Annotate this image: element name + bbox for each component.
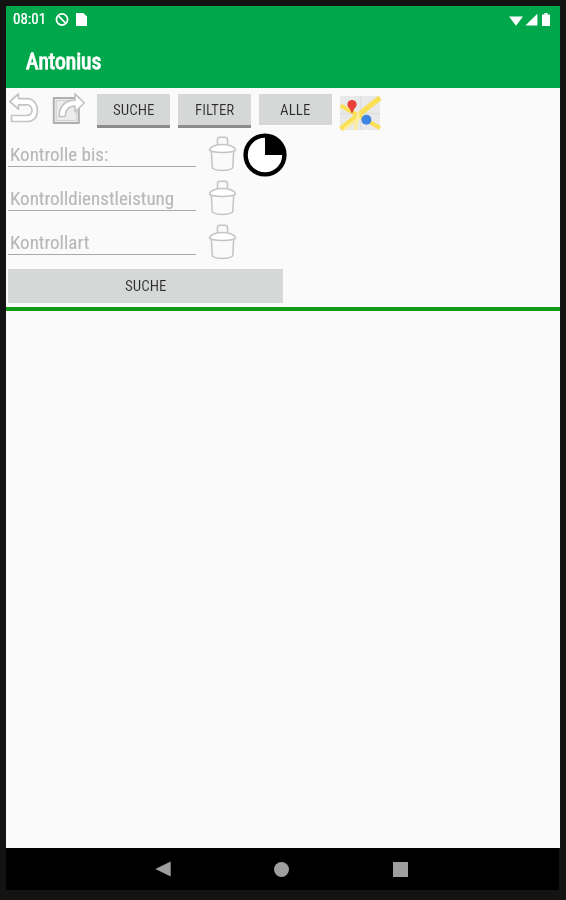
button[interactable]: Map [339,96,381,130]
staticText: 08:01 [13,10,47,28]
button[interactable]: FILTER [178,94,251,128]
staticText: Kontrollart [10,231,90,253]
button[interactable]: Kontrolldienstleistung [8,182,196,222]
button[interactable]: SUCHE [97,94,170,128]
button[interactable]: Undo [6,91,44,125]
button[interactable]: Kontrolle bis: [8,138,196,178]
staticText: SUCHE [125,277,167,295]
staticText: Kontrolldienstleistung [10,187,175,209]
button[interactable]: Home [259,848,303,890]
staticText: ALLE [280,101,311,119]
button[interactable]: Delete [206,222,239,262]
button[interactable]: Delete [206,178,239,218]
button[interactable]: Share [50,91,88,125]
button[interactable]: ALLE [259,94,332,125]
button[interactable]: Back [141,848,185,890]
button[interactable]: Time [242,135,288,175]
button[interactable]: Recents [378,848,422,890]
button[interactable]: SUCHE [8,269,283,303]
staticText: FILTER [195,101,235,119]
button[interactable]: Kontrollart [8,226,196,266]
staticText: Kontrolle bis: [10,143,109,165]
button[interactable]: Delete [206,134,239,174]
staticText: Antonius [26,49,102,74]
staticText: SUCHE [113,101,155,119]
